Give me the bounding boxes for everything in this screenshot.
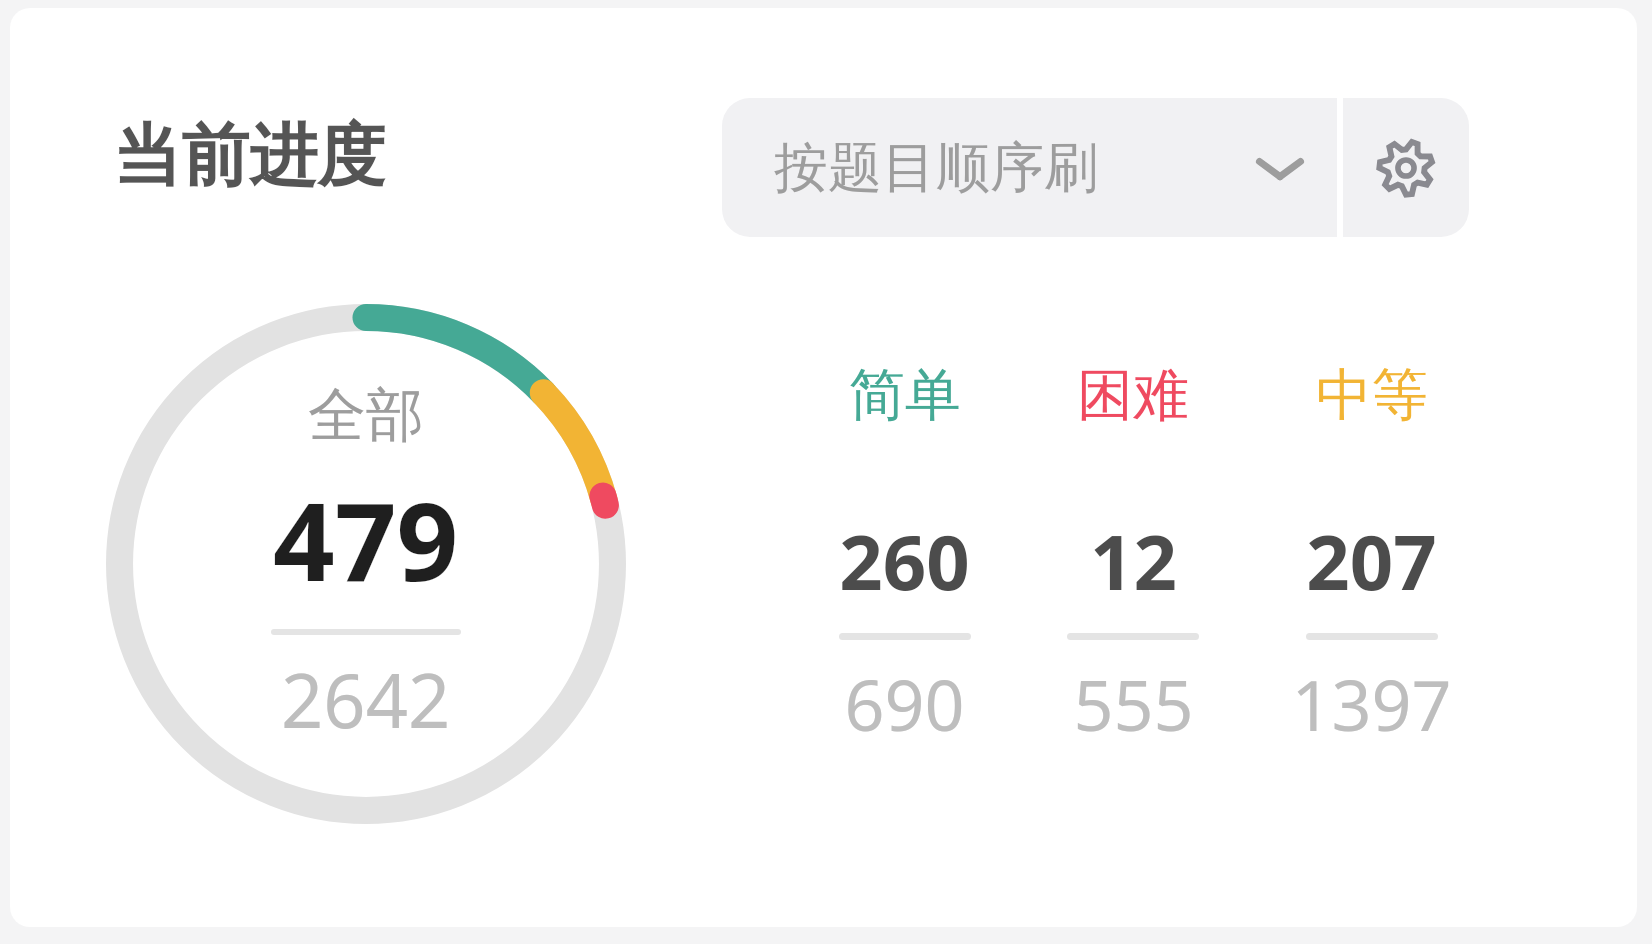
staticText: 479	[273, 466, 459, 613]
staticText: 555	[1073, 656, 1194, 751]
staticText: 260	[839, 509, 970, 613]
staticText: 全部	[308, 379, 424, 452]
button[interactable]: Settings	[1343, 98, 1469, 237]
staticText: 207	[1306, 509, 1437, 613]
button[interactable]: 简单	[782, 360, 1027, 751]
staticText: 当前进度	[113, 114, 385, 200]
staticText: 简单	[849, 360, 961, 431]
staticText: 按题目顺序刷	[774, 134, 1098, 202]
button[interactable]: 困难	[1027, 360, 1239, 751]
staticText: 2642	[281, 649, 451, 750]
staticText: 1397	[1291, 656, 1452, 751]
staticText: 12	[1090, 509, 1177, 613]
staticText: 困难	[1077, 360, 1189, 431]
staticText: 中等	[1316, 360, 1428, 431]
button[interactable]: 中等	[1239, 360, 1504, 751]
staticText: 690	[844, 656, 965, 751]
button[interactable]: 按题目顺序刷	[722, 98, 1337, 237]
